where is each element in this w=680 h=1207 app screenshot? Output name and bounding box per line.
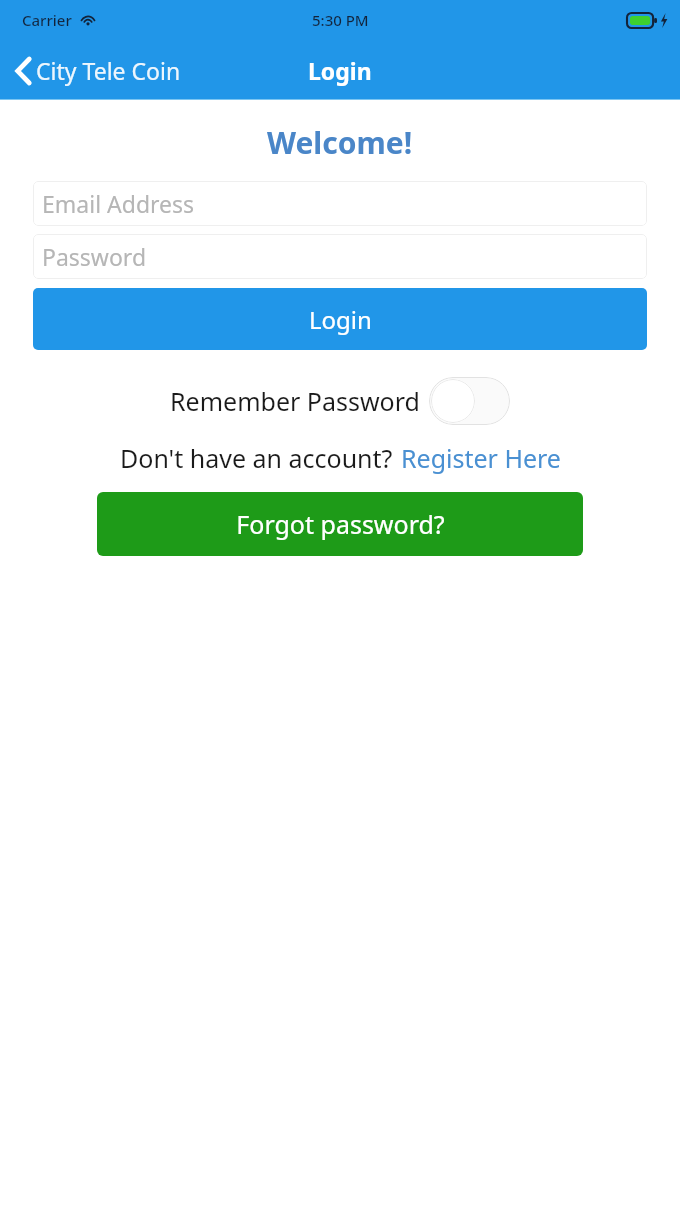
button[interactable]: Password bbox=[33, 234, 647, 279]
button[interactable]: Remember Password toggle bbox=[429, 377, 510, 425]
button[interactable]: Email Address bbox=[33, 181, 647, 226]
staticText: Password bbox=[42, 241, 147, 272]
staticText: Register Here bbox=[401, 441, 561, 475]
button[interactable]: Register Here bbox=[401, 441, 561, 475]
other: Back bbox=[14, 56, 32, 86]
button[interactable]: Login bbox=[33, 288, 647, 350]
staticText: 5:30 PM bbox=[312, 10, 369, 30]
staticText: Carrier bbox=[22, 10, 72, 30]
staticText: Login bbox=[309, 303, 372, 336]
staticText: Remember Password bbox=[170, 384, 420, 418]
staticText: Email Address bbox=[42, 188, 195, 219]
staticText: Don't have an account? bbox=[120, 441, 393, 475]
staticText: Welcome! bbox=[267, 122, 413, 163]
staticText: Forgot password? bbox=[236, 507, 445, 541]
staticText: City Tele Coin bbox=[36, 55, 181, 86]
staticText: Login bbox=[308, 55, 372, 86]
button[interactable]: Back bbox=[0, 49, 191, 92]
button[interactable]: Forgot password? bbox=[97, 492, 583, 556]
